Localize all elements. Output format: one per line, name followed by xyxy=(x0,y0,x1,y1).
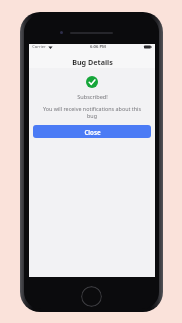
staticText: Close xyxy=(84,128,101,136)
staticText: Bug Details xyxy=(72,57,113,67)
staticText: Carrier xyxy=(32,44,46,50)
button[interactable]: Close xyxy=(33,125,151,138)
staticText: You will receive notifications about thi… xyxy=(42,105,142,120)
other: Wi-Fi signal xyxy=(48,45,53,50)
staticText: Subscribed! xyxy=(77,93,108,101)
staticText: 6:06 PM xyxy=(90,44,106,50)
